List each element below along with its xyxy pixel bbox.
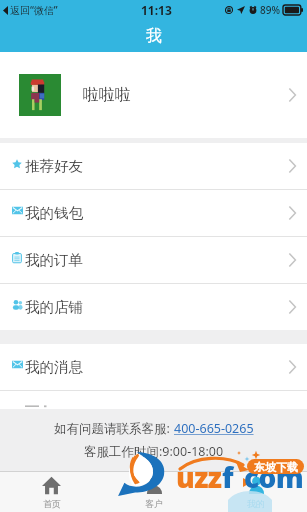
button[interactable]: 我的店铺 xyxy=(0,284,307,330)
staticText: 我的 xyxy=(247,498,265,509)
button[interactable]: 我的订单 xyxy=(0,237,307,283)
button[interactable]: 我的消息 xyxy=(0,344,307,390)
other: More xyxy=(289,301,296,313)
button[interactable]: 400-665-0265 xyxy=(174,420,254,437)
button[interactable]: 客户 xyxy=(103,472,205,512)
staticText: 如有问题请联系客服: xyxy=(54,420,170,437)
staticText: 推荐好友 xyxy=(25,157,83,175)
other: More xyxy=(289,160,296,172)
staticText: 89% xyxy=(260,3,280,17)
staticText: 11:13 xyxy=(141,2,172,18)
other: More xyxy=(289,361,296,373)
button[interactable] xyxy=(0,391,307,409)
button[interactable]: 啦啦啦 xyxy=(0,52,307,138)
other: More xyxy=(289,207,296,219)
staticText: uzz xyxy=(176,458,222,496)
staticText: 我 xyxy=(146,26,162,46)
staticText: 客服工作时间:9:00-18:00 xyxy=(84,443,224,460)
button[interactable]: 首页 xyxy=(0,472,103,512)
staticText: 我的订单 xyxy=(25,251,83,269)
other: More xyxy=(289,89,296,101)
staticText: f xyxy=(222,458,234,496)
other: More xyxy=(289,254,296,266)
staticText: 返回“微信” xyxy=(10,3,58,17)
staticText: 我的店铺 xyxy=(25,298,83,316)
button[interactable]: 我的 xyxy=(205,472,307,512)
staticText: 客户 xyxy=(145,498,163,509)
staticText: 啦啦啦 xyxy=(83,85,131,105)
staticText: 东坡下载 xyxy=(254,460,298,474)
staticText: 我的钱包 xyxy=(25,204,83,222)
staticText: com xyxy=(244,458,304,496)
button[interactable]: 我的钱包 xyxy=(0,190,307,236)
staticText: 我的消息 xyxy=(25,358,83,376)
staticText: 首页 xyxy=(43,498,61,509)
button[interactable]: 推荐好友 xyxy=(0,143,307,189)
